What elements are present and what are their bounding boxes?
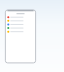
button[interactable]: List item 3 [5,23,35,27]
button[interactable]: List item 4 [5,27,35,31]
button[interactable]: List item 2 [5,19,35,23]
button[interactable]: List item 1 [5,15,35,19]
button[interactable]: List item 5 [5,31,35,35]
